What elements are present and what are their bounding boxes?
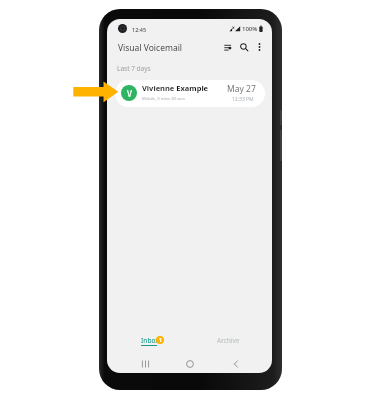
staticText: 12:45 (132, 26, 147, 33)
button[interactable]: More options (252, 40, 266, 54)
staticText: Archive (217, 336, 240, 345)
button[interactable]: Home (183, 357, 197, 371)
staticText: Visual Voicemail (118, 42, 183, 54)
staticText: 12:33 PM (232, 96, 254, 103)
staticText: Mobile, 0 mins 30 secs (142, 96, 186, 102)
button[interactable]: Inbox (124, 331, 176, 349)
button[interactable]: Search (237, 40, 251, 54)
button[interactable]: V (115, 80, 265, 107)
staticText: V (127, 88, 132, 99)
staticText: Vivienne Example (142, 83, 209, 93)
staticText: 1 (159, 337, 162, 344)
staticText: Last 7 days (117, 64, 151, 73)
staticText: 100% (242, 25, 258, 33)
button[interactable]: Back (229, 357, 243, 371)
staticText: May 27 (227, 83, 256, 95)
button[interactable]: Sort (220, 40, 234, 54)
button[interactable]: Recent apps (138, 357, 152, 371)
button[interactable]: Archive (205, 331, 252, 349)
staticText: Inbox (141, 336, 159, 345)
